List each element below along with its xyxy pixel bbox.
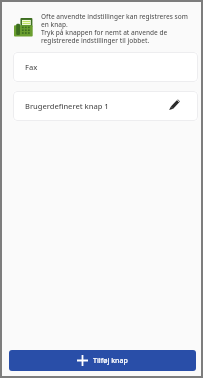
button[interactable]: Rediger knap — [169, 99, 180, 110]
button[interactable]: Fax — [13, 52, 198, 82]
staticText: Fax — [25, 62, 38, 72]
staticText: Ofte anvendte indstillinger kan registre… — [41, 12, 197, 45]
button[interactable]: Tilføj knap — [9, 350, 196, 371]
button[interactable]: Brugerdefineret knap 1 — [13, 91, 198, 121]
staticText: Brugerdefineret knap 1 — [25, 101, 109, 111]
staticText: Tilføj knap — [93, 356, 128, 366]
